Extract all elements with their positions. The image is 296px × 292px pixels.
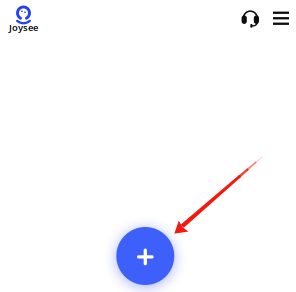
button[interactable]: Add device (116, 227, 174, 285)
button[interactable]: Menu (265, 6, 296, 31)
staticText: Joysee (9, 21, 38, 33)
button[interactable]: Customer support (240, 5, 265, 32)
